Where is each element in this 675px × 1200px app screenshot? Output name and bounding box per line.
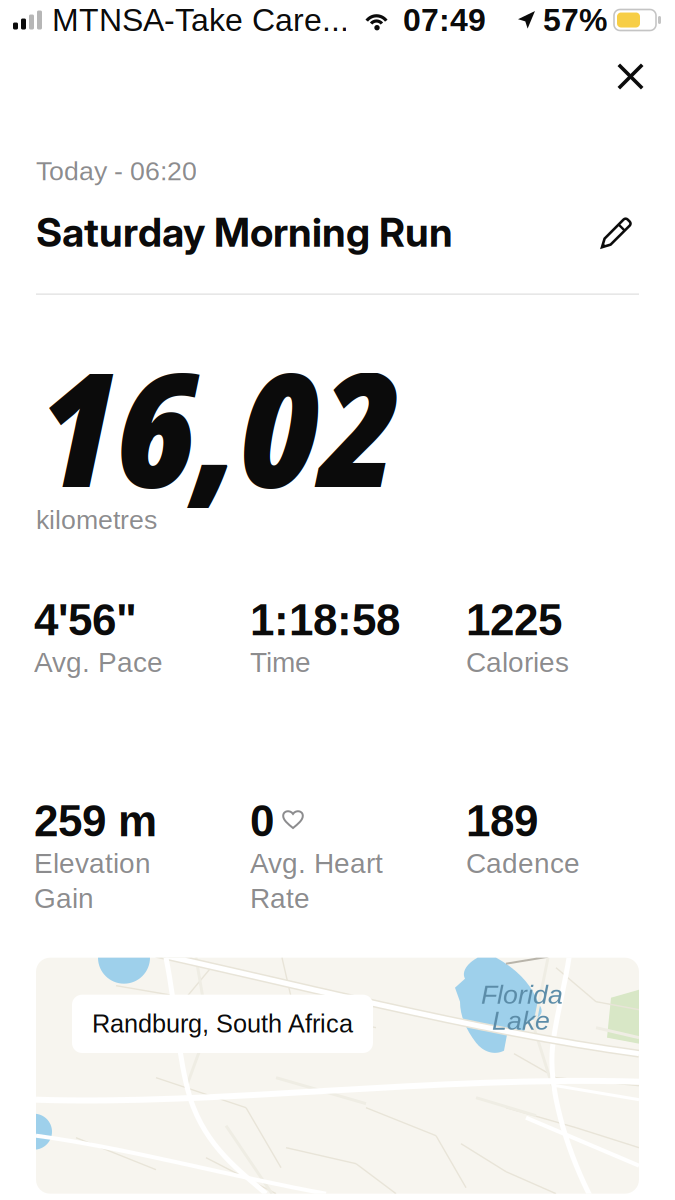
staticText: 16,02 bbox=[36, 319, 399, 533]
staticText: Randburg, South Africa bbox=[92, 1010, 353, 1038]
staticText: Elevation bbox=[34, 848, 151, 879]
staticText: Rate bbox=[250, 883, 310, 914]
staticText: Time bbox=[250, 647, 311, 678]
staticText: MTNSA-Take Care... bbox=[52, 2, 349, 38]
button[interactable]: Edit activity name bbox=[594, 209, 639, 255]
staticText: Avg. Heart bbox=[250, 848, 383, 879]
button[interactable]: Route map, Randburg, South Africa bbox=[0, 958, 675, 1194]
staticText: Florida bbox=[481, 980, 563, 1009]
staticText: 0 bbox=[250, 796, 274, 846]
staticText: kilometres bbox=[36, 505, 157, 535]
staticText: 189 bbox=[466, 796, 538, 846]
staticText: 07:49 bbox=[403, 2, 486, 38]
staticText: 1225 bbox=[466, 595, 562, 645]
staticText: Cadence bbox=[466, 848, 580, 879]
staticText: 259 m bbox=[34, 796, 157, 846]
staticText: Lake bbox=[492, 1006, 550, 1035]
staticText: 57% bbox=[543, 2, 607, 38]
staticText: Gain bbox=[34, 883, 94, 914]
staticText: 1:18:58 bbox=[250, 595, 400, 645]
staticText: Saturday Morning Run bbox=[36, 208, 453, 256]
button[interactable]: Close bbox=[605, 51, 656, 102]
staticText: Calories bbox=[466, 647, 569, 678]
staticText: 4'56" bbox=[34, 595, 137, 645]
staticText: Avg. Pace bbox=[34, 647, 163, 678]
staticText: Today - 06:20 bbox=[36, 156, 197, 186]
